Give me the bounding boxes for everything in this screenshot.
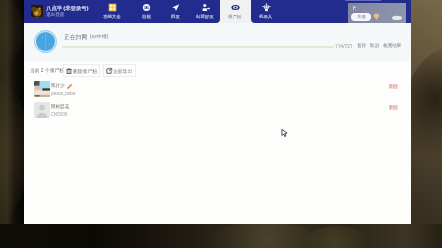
button[interactable]: 照片少 — [24, 79, 411, 100]
button[interactable]: f: — [348, 3, 406, 23]
staticText: 自检 — [142, 14, 151, 20]
staticText: 充值 — [357, 14, 366, 20]
staticText: 群发 — [171, 14, 180, 20]
button[interactable]: 全部导出 — [106, 64, 133, 77]
staticText: 全部导出 — [113, 68, 133, 74]
staticText: 正在扫网 — [64, 33, 88, 40]
button[interactable]: 机器人 — [251, 0, 281, 23]
button[interactable]: 群发 — [160, 0, 190, 23]
button[interactable]: 出群好友 — [190, 0, 220, 23]
button[interactable]: 八点半 (未登录号) — [31, 4, 89, 17]
staticText: 照片少 — [51, 83, 65, 89]
button[interactable]: 删除 — [389, 84, 399, 90]
staticText: 当前 2 个僵尸粉 — [30, 67, 65, 74]
staticText: 出群好友 — [196, 14, 214, 20]
button[interactable]: 阿根廷花 — [24, 100, 411, 121]
staticText: 检测结果 — [383, 43, 402, 49]
staticText: 取消 — [370, 43, 380, 49]
button[interactable]: 僵尸粉 — [220, 0, 250, 23]
button[interactable]: 删除 — [389, 105, 399, 111]
staticText: f: — [353, 5, 357, 12]
staticText: 僵尸粉 — [228, 14, 242, 20]
button[interactable]: 检测结果 — [383, 43, 402, 49]
button[interactable]: 删除僵尸粉 — [66, 64, 97, 77]
staticText: 删除 — [389, 105, 399, 111]
staticText: peace_bebe — [51, 90, 76, 96]
button[interactable]: 暂停 — [357, 43, 367, 49]
staticText: 功能大全 — [103, 14, 121, 20]
button[interactable]: 取消 — [370, 43, 380, 49]
button[interactable]: 当前 2 个僵尸粉 — [29, 65, 66, 76]
staticText: 暂停 — [357, 43, 367, 49]
staticText: 114/721 — [335, 43, 353, 49]
staticText: CN5509 — [51, 111, 68, 117]
button[interactable]: 自检 — [131, 0, 161, 23]
staticText: 删除僵尸粉 — [73, 68, 97, 74]
staticText: 八点半 (未登录号) — [46, 4, 89, 11]
staticText: 机器人 — [259, 14, 273, 20]
staticText: 阿根廷花 — [51, 104, 70, 110]
button[interactable]: 功能大全 — [97, 0, 127, 23]
staticText: (xx中继) — [90, 33, 109, 40]
staticText: 删除 — [389, 84, 399, 90]
staticText: 退出登录 — [46, 12, 65, 17]
